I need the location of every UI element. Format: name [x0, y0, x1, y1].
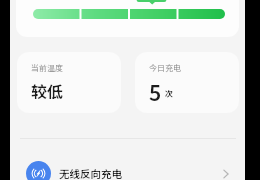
staticText: 5: [149, 77, 162, 107]
other: 更多: [219, 167, 233, 180]
staticText: 次: [165, 88, 173, 100]
staticText: 今日充电: [149, 62, 181, 74]
button[interactable]: 当前温度: [17, 52, 121, 113]
staticText: 较低: [31, 79, 64, 102]
staticText: 无线反向充电: [59, 166, 122, 180]
staticText: 当前温度: [31, 62, 63, 74]
button[interactable]: 今日充电: [135, 52, 239, 113]
button[interactable]: 无线反向充电: [10, 150, 245, 180]
